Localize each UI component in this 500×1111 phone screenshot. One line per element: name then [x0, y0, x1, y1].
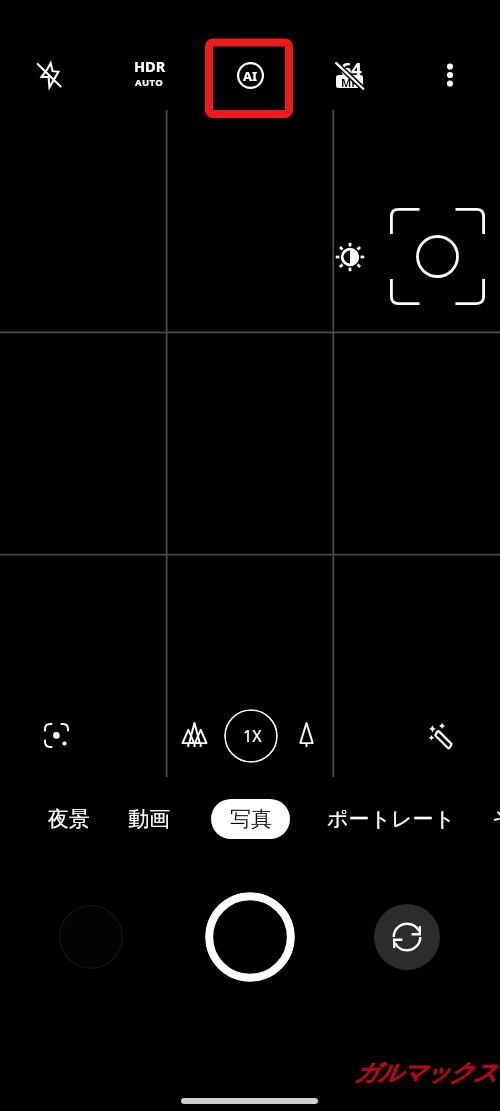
button[interactable]: Exposure	[328, 235, 372, 279]
staticText: MP	[341, 75, 359, 88]
button[interactable]: 写真	[211, 799, 290, 839]
button[interactable]: Wide zoom	[286, 714, 327, 755]
button[interactable]: 夜景	[4, 799, 134, 839]
staticText: 夜景	[48, 806, 90, 832]
button[interactable]: Take photo	[205, 892, 295, 982]
staticText: ポートレート	[327, 806, 455, 832]
button[interactable]: AI scene detection	[226, 51, 274, 99]
staticText: 写真	[230, 806, 272, 832]
button[interactable]: 動画	[84, 799, 214, 839]
button[interactable]: Switch camera	[374, 904, 440, 970]
button[interactable]: 64 MP mode off	[326, 51, 374, 99]
staticText: AI	[243, 67, 258, 85]
button[interactable]: ポートレート	[326, 799, 456, 839]
staticText: AUTO	[135, 76, 164, 89]
button[interactable]: そ	[438, 799, 500, 839]
button[interactable]: Scan	[32, 711, 80, 759]
button[interactable]: Filters	[416, 711, 464, 759]
button[interactable]: Flash off	[26, 51, 74, 99]
staticText: そ	[492, 806, 500, 832]
staticText: 1X	[243, 725, 262, 747]
button[interactable]: 1X	[224, 709, 278, 763]
button[interactable]: More options	[426, 51, 474, 99]
button[interactable]: Gallery	[59, 905, 123, 969]
staticText: ガルマックス	[354, 1058, 497, 1088]
button[interactable]: HDR	[119, 56, 180, 94]
staticText: 64	[341, 57, 362, 82]
button[interactable]: Ultra wide zoom	[172, 712, 217, 757]
staticText: HDR	[134, 56, 166, 76]
staticText: 動画	[128, 806, 170, 832]
